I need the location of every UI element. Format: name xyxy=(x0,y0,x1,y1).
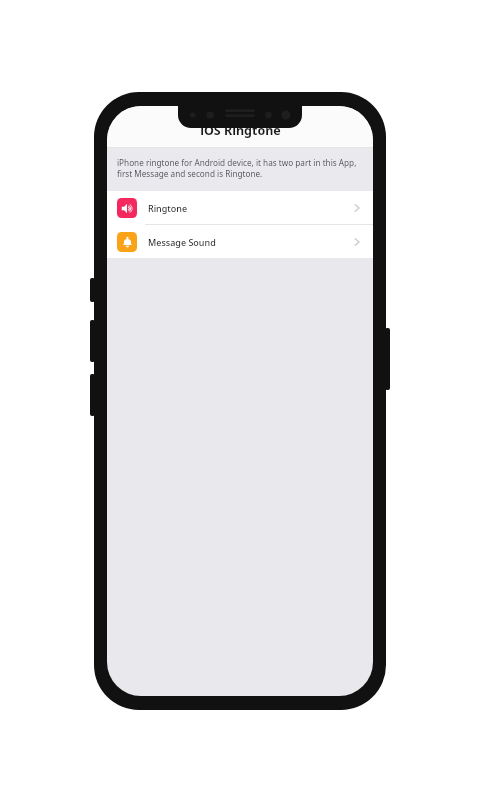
staticText: Ringtone xyxy=(148,202,188,214)
staticText: Message Sound xyxy=(148,236,216,248)
staticText: iPhone ringtone for Android device, it h… xyxy=(117,157,361,180)
button[interactable]: Message Sound xyxy=(107,225,373,258)
staticText: iOS Ringtone xyxy=(200,122,281,139)
button[interactable]: Ringtone xyxy=(107,191,373,224)
